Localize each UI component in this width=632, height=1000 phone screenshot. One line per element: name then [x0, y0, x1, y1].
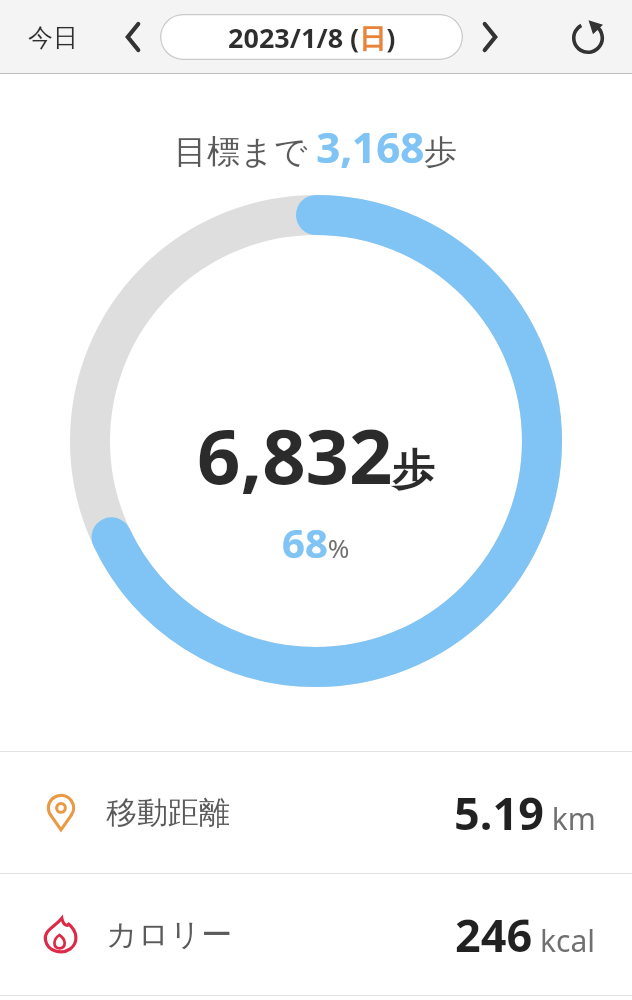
button[interactable]: Next day: [467, 15, 511, 59]
staticText: 68%: [282, 515, 350, 569]
button[interactable]: Refresh: [562, 11, 614, 63]
staticText: 目標まで 3,168歩: [174, 118, 458, 175]
staticText: カロリー: [106, 915, 233, 954]
button[interactable]: 今日: [24, 18, 82, 57]
staticText: 246 kcal: [455, 904, 596, 965]
staticText: 5.19 km: [454, 782, 596, 843]
button[interactable]: カロリー: [0, 874, 632, 995]
staticText: 今日: [28, 22, 78, 53]
staticText: 2023/1/8 (日): [228, 19, 396, 56]
button[interactable]: Previous day: [112, 15, 156, 59]
staticText: 6,832歩: [197, 403, 435, 507]
button[interactable]: 移動距離: [0, 752, 632, 873]
staticText: 移動距離: [106, 793, 230, 832]
button[interactable]: 2023/1/8 (日): [160, 14, 463, 60]
